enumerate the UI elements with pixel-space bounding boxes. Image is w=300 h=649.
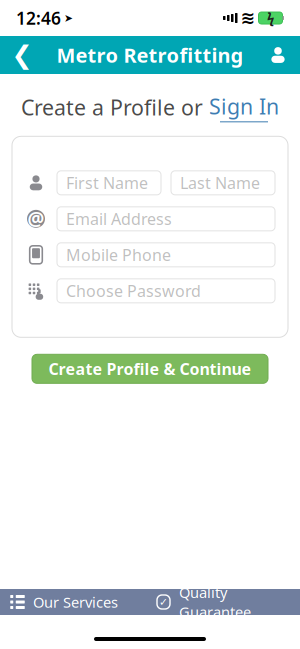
button[interactable]: First Name	[57, 171, 161, 195]
button[interactable]: Account	[256, 36, 300, 74]
button[interactable]: Create a Profile or	[21, 92, 279, 122]
staticText: Create Profile & Continue	[48, 358, 251, 379]
staticText: Sign In	[209, 92, 279, 120]
button[interactable]: Email Address	[57, 207, 275, 231]
staticText: ϟ	[267, 9, 274, 27]
staticText: Last Name	[180, 172, 260, 193]
staticText: ≋	[240, 8, 255, 28]
button[interactable]: Choose Password	[57, 279, 275, 303]
staticText: Email Address	[66, 208, 172, 229]
staticText: First Name	[66, 172, 148, 193]
staticText: @	[27, 206, 44, 231]
staticText: 12:46	[16, 6, 61, 29]
staticText: ➤	[64, 12, 73, 24]
button[interactable]: ✓	[150, 589, 300, 615]
button[interactable]: Last Name	[171, 171, 275, 195]
staticText: Metro Retrofitting	[56, 42, 243, 68]
staticText: Create a Profile or	[21, 93, 209, 121]
staticText: Mobile Phone	[66, 244, 171, 265]
button[interactable]: Back	[0, 36, 44, 74]
staticText: ❮	[11, 41, 32, 69]
staticText: Quality Guarantee	[179, 582, 251, 621]
staticText: Choose Password	[66, 280, 201, 301]
button[interactable]: Mobile Phone	[57, 243, 275, 267]
staticText: Our Services	[33, 592, 118, 612]
button[interactable]: Our Services	[0, 589, 150, 615]
button[interactable]: Create Profile & Continue	[32, 354, 268, 383]
staticText: ✓	[159, 596, 168, 608]
